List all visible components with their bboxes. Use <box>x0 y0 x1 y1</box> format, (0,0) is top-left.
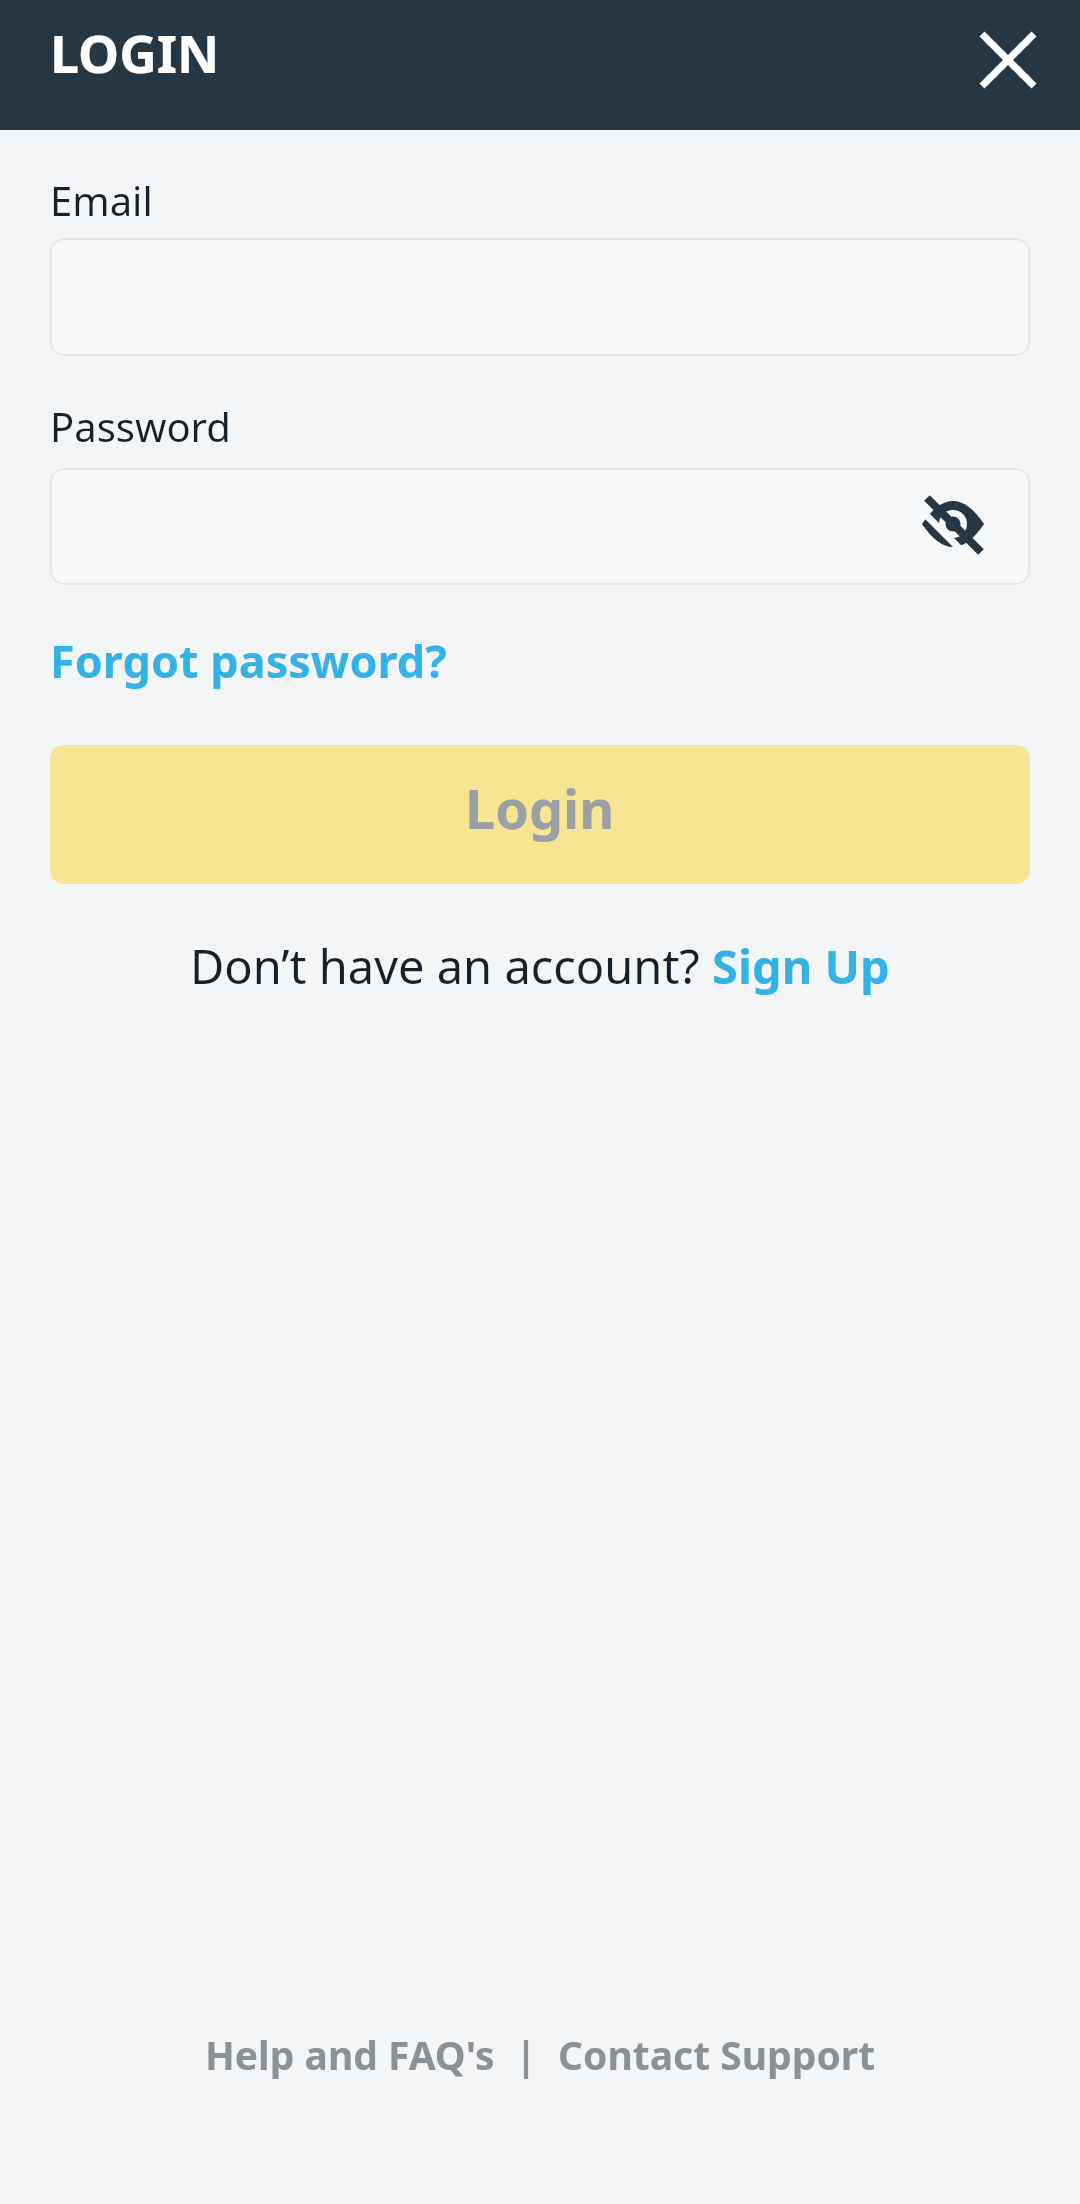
button[interactable] <box>50 468 1030 585</box>
staticText: Email <box>50 173 153 227</box>
button[interactable]: Login <box>50 745 1030 884</box>
staticText: Don’t have an account? <box>190 934 712 998</box>
staticText: Login <box>465 771 615 845</box>
button[interactable]: Contact Support <box>558 2028 876 2081</box>
button[interactable] <box>50 238 1030 356</box>
button[interactable] <box>958 10 1058 110</box>
button[interactable]: Forgot password? <box>50 630 447 691</box>
button[interactable]: Help and FAQ's <box>205 2028 495 2081</box>
staticText: Password <box>50 399 231 453</box>
button[interactable]: Sign Up <box>712 934 890 998</box>
staticText: LOGIN <box>50 17 220 88</box>
staticText: | <box>495 2028 558 2081</box>
